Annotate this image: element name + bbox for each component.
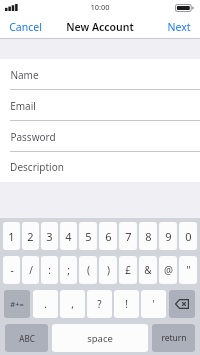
staticText: 8 bbox=[145, 229, 152, 244]
button[interactable]: " bbox=[179, 256, 197, 284]
button[interactable]: Cancel bbox=[0, 14, 51, 39]
button[interactable]: 1 bbox=[3, 222, 20, 250]
staticText: New Account bbox=[66, 20, 134, 34]
staticText: ) bbox=[107, 263, 110, 277]
staticText: 9 bbox=[165, 229, 172, 244]
button[interactable]: @ bbox=[159, 256, 177, 284]
staticText: 2 bbox=[27, 229, 34, 244]
staticText: ' bbox=[152, 297, 155, 311]
button[interactable]: - bbox=[3, 256, 20, 284]
staticText: ? bbox=[97, 297, 102, 311]
staticText: 5 bbox=[85, 229, 92, 244]
staticText: , bbox=[71, 297, 74, 311]
staticText: #+= bbox=[10, 299, 24, 309]
button[interactable]: 9 bbox=[159, 222, 177, 250]
button[interactable]: Delete bbox=[169, 290, 195, 318]
staticText: & bbox=[144, 263, 152, 277]
button[interactable]: £ bbox=[119, 256, 137, 284]
button[interactable]: return bbox=[152, 324, 195, 352]
button[interactable]: ! bbox=[114, 290, 139, 318]
button[interactable]: . bbox=[33, 290, 58, 318]
staticText: 1 bbox=[8, 229, 15, 244]
staticText: Email bbox=[10, 99, 36, 113]
staticText: . bbox=[44, 297, 47, 311]
button[interactable]: ( bbox=[79, 256, 97, 284]
button[interactable]: & bbox=[139, 256, 157, 284]
staticText: ; bbox=[67, 263, 70, 277]
button[interactable]: 0 bbox=[179, 222, 197, 250]
button[interactable]: ? bbox=[87, 290, 112, 318]
staticText: 6 bbox=[105, 229, 112, 244]
staticText: 0 bbox=[185, 229, 192, 244]
staticText: Cancel bbox=[9, 20, 42, 34]
button[interactable]: , bbox=[60, 290, 85, 318]
button[interactable]: / bbox=[22, 256, 39, 284]
button[interactable]: 7 bbox=[119, 222, 137, 250]
staticText: £ bbox=[125, 263, 131, 277]
button[interactable]: #+= bbox=[4, 290, 30, 318]
button[interactable]: space bbox=[52, 324, 148, 352]
button[interactable]: ) bbox=[99, 256, 117, 284]
button[interactable]: 2 bbox=[22, 222, 39, 250]
staticText: Description bbox=[10, 160, 64, 174]
staticText: ( bbox=[87, 263, 90, 277]
staticText: 4 bbox=[65, 229, 72, 244]
staticText: ABC bbox=[19, 333, 35, 344]
button[interactable]: : bbox=[41, 256, 58, 284]
button[interactable]: ' bbox=[141, 290, 166, 318]
button[interactable]: ; bbox=[60, 256, 77, 284]
staticText: @ bbox=[164, 263, 173, 277]
button[interactable]: ABC bbox=[5, 324, 48, 352]
staticText: Next bbox=[167, 20, 191, 34]
staticText: " bbox=[186, 263, 191, 277]
button[interactable]: 4 bbox=[60, 222, 77, 250]
staticText: - bbox=[10, 263, 14, 277]
staticText: / bbox=[29, 263, 33, 277]
staticText: 7 bbox=[125, 229, 132, 244]
staticText: : bbox=[48, 263, 51, 277]
button[interactable]: 3 bbox=[41, 222, 58, 250]
staticText: Name bbox=[10, 68, 39, 82]
button[interactable]: 6 bbox=[99, 222, 117, 250]
button[interactable]: Name bbox=[0, 59, 200, 90]
button[interactable]: Description bbox=[0, 152, 200, 182]
button[interactable]: 8 bbox=[139, 222, 157, 250]
button[interactable]: 5 bbox=[79, 222, 97, 250]
staticText: 3 bbox=[46, 229, 53, 244]
button[interactable]: Email bbox=[0, 90, 200, 121]
staticText: ! bbox=[125, 297, 128, 311]
button[interactable]: Next bbox=[158, 14, 200, 39]
staticText: 10:00 bbox=[90, 2, 110, 12]
staticText: Password bbox=[10, 130, 56, 144]
staticText: return bbox=[161, 332, 187, 344]
staticText: space bbox=[87, 332, 113, 345]
button[interactable]: Password bbox=[0, 121, 200, 152]
